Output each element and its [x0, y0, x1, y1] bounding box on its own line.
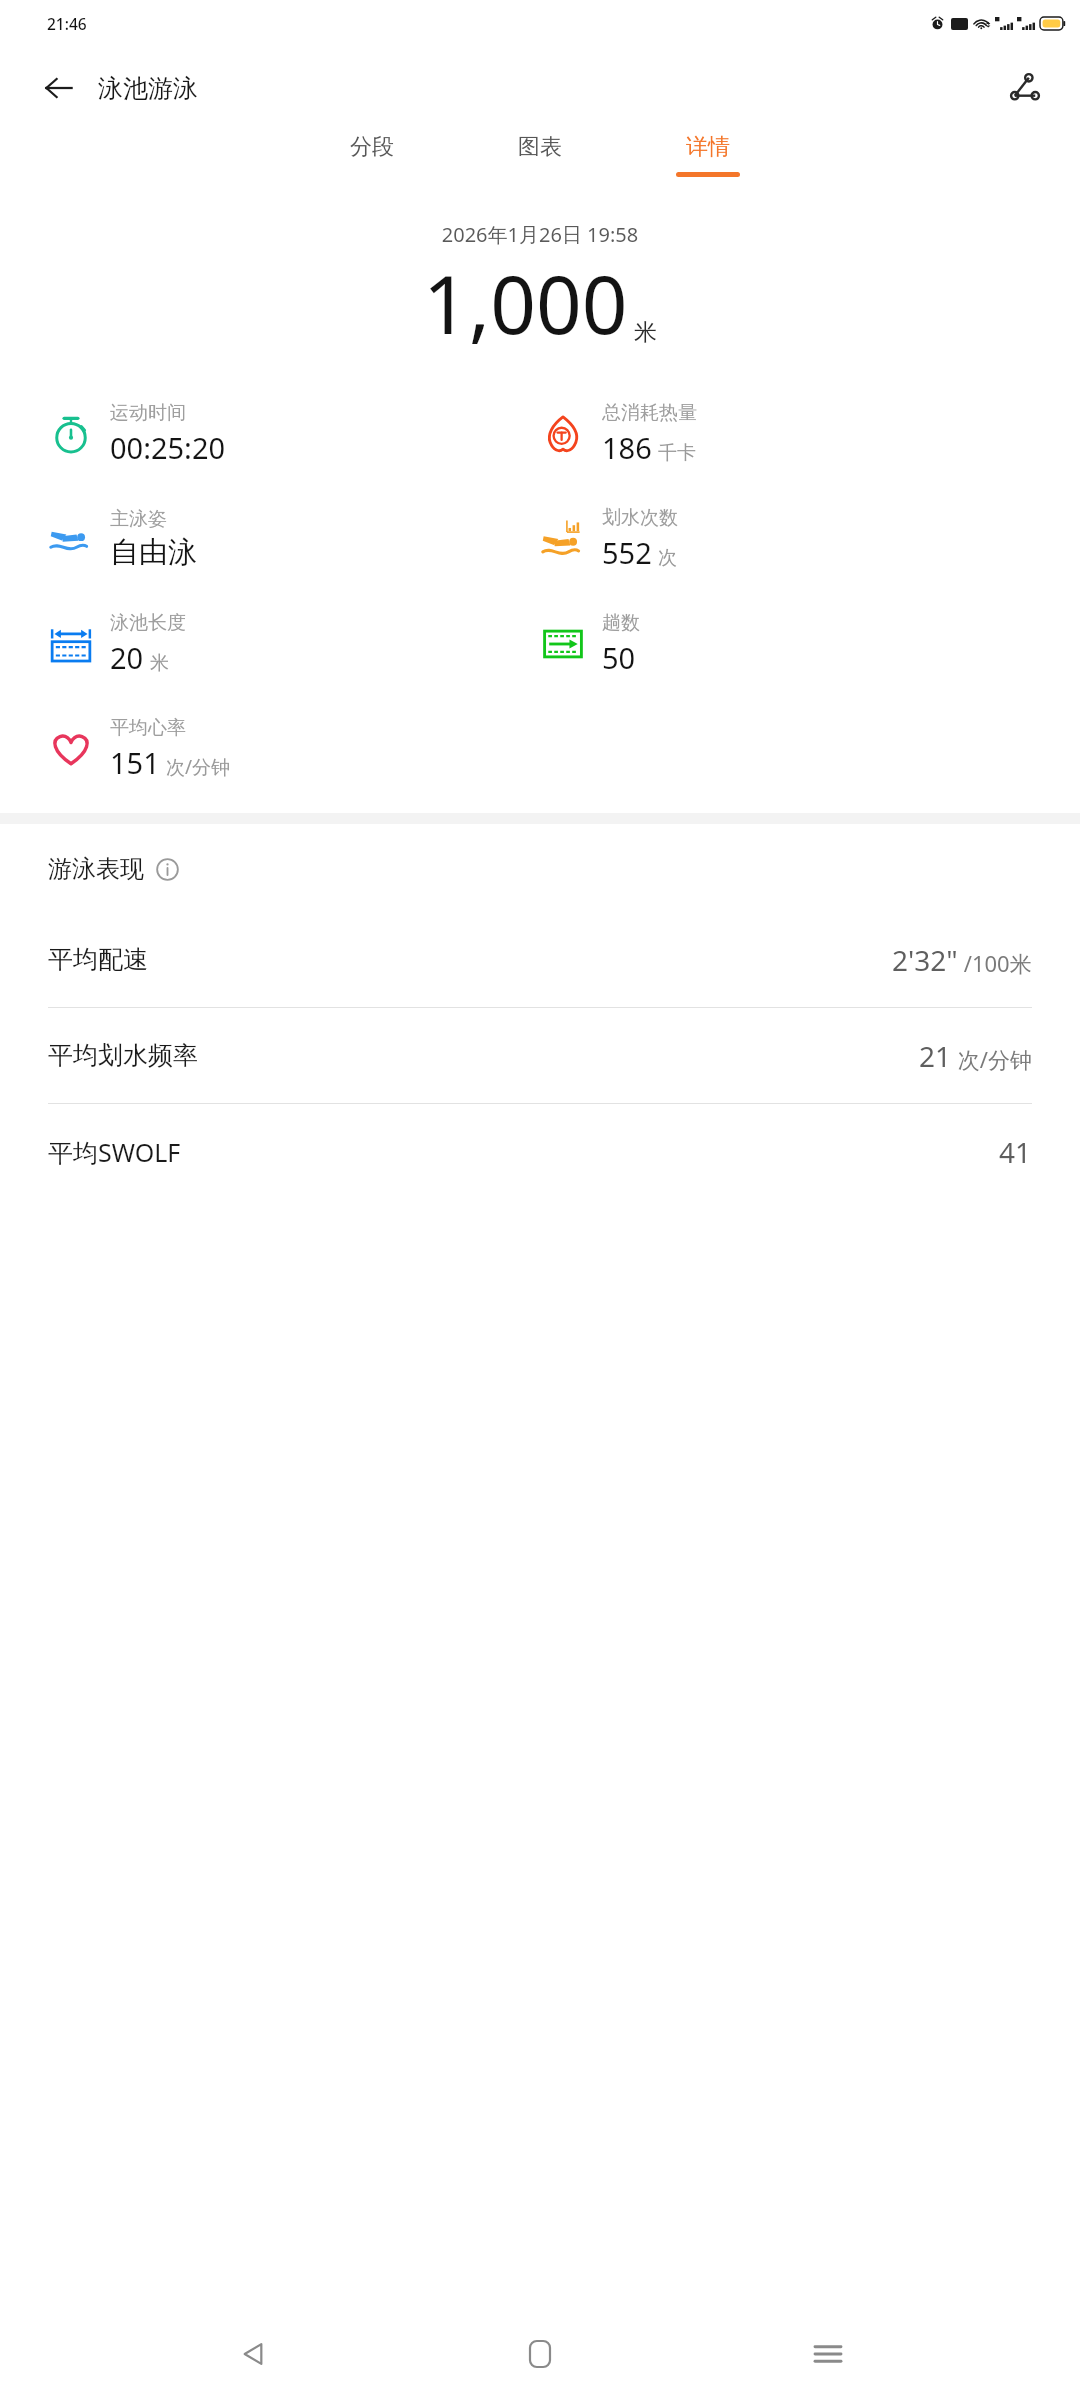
staticText: 平均心率: [110, 716, 186, 740]
button[interactable]: 划水次数: [540, 486, 678, 591]
staticText: 图表: [518, 133, 562, 161]
staticText: 186: [602, 428, 652, 467]
staticText: 2026年1月26日 19:58: [0, 221, 1080, 248]
staticText: 21: [919, 1037, 952, 1075]
staticText: 主泳姿: [110, 507, 167, 531]
staticText: 米: [634, 318, 657, 347]
button[interactable]: 趟数: [540, 591, 640, 696]
button[interactable]: 游泳表现: [48, 854, 1080, 884]
staticText: 千卡: [658, 441, 696, 465]
button[interactable]: 总消耗热量: [540, 381, 697, 486]
staticText: 总消耗热量: [602, 401, 697, 425]
button[interactable]: 分段: [312, 129, 432, 172]
staticText: 552: [602, 533, 652, 572]
button[interactable]: Back: [36, 65, 82, 111]
staticText: 游泳表现: [48, 854, 144, 884]
staticText: 趟数: [602, 611, 640, 635]
button[interactable]: Home: [505, 2319, 575, 2389]
staticText: 151: [110, 743, 160, 782]
staticText: 自由泳: [110, 534, 197, 571]
button[interactable]: 运动时间: [48, 381, 226, 486]
staticText: 50: [602, 638, 636, 677]
staticText: 运动时间: [110, 401, 186, 425]
other: Info: [154, 856, 180, 882]
button[interactable]: Share: [1000, 63, 1050, 113]
staticText: 泳池长度: [110, 611, 186, 635]
staticText: 次/分钟: [166, 754, 231, 780]
button[interactable]: 图表: [480, 129, 600, 172]
staticText: 泳池游泳: [98, 73, 198, 104]
button[interactable]: 泳池长度: [48, 591, 186, 696]
button[interactable]: 平均心率: [48, 696, 231, 801]
staticText: 平均配速: [48, 944, 148, 975]
button[interactable]: 主泳姿: [48, 486, 197, 591]
staticText: 次: [658, 546, 677, 570]
staticText: 平均划水频率: [48, 1040, 198, 1071]
staticText: 41: [999, 1133, 1032, 1171]
staticText: 平均SWOLF: [48, 1135, 181, 1169]
staticText: 次/分钟: [952, 1044, 1032, 1074]
staticText: 20: [110, 638, 144, 677]
button[interactable]: 平均划水频率: [0, 1008, 1080, 1103]
staticText: 00:25:20: [110, 428, 226, 467]
staticText: 21:46: [47, 13, 87, 34]
staticText: 划水次数: [602, 506, 678, 530]
button[interactable]: 平均配速: [0, 912, 1080, 1007]
button[interactable]: Recents: [793, 2319, 863, 2389]
staticText: 详情: [686, 133, 730, 161]
staticText: 2'32": [892, 941, 958, 979]
staticText: 1,000: [423, 248, 628, 357]
button[interactable]: Back: [218, 2319, 288, 2389]
button[interactable]: 详情: [648, 129, 768, 177]
staticText: 分段: [350, 133, 394, 161]
staticText: 米: [150, 651, 169, 675]
button[interactable]: 平均SWOLF: [0, 1104, 1080, 1199]
staticText: /100米: [958, 948, 1032, 978]
